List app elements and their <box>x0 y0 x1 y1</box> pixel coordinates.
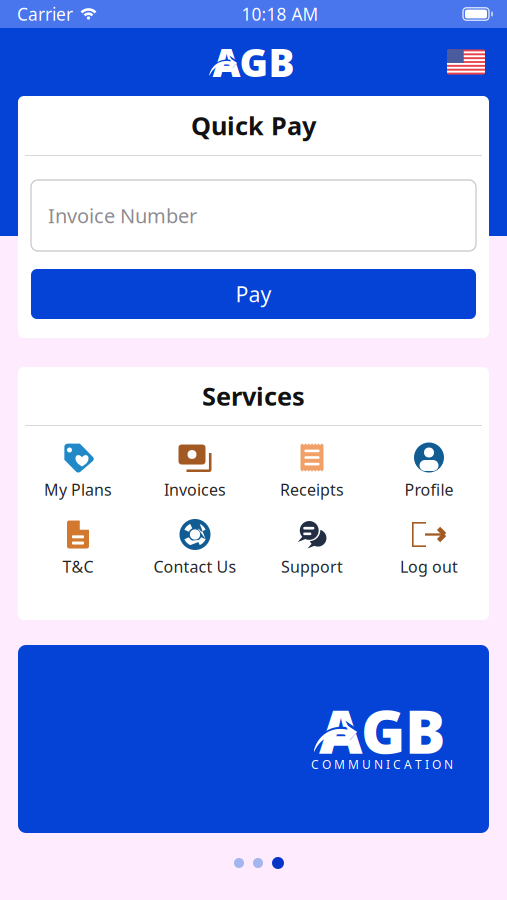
staticText: Contact Us <box>153 556 236 577</box>
staticText: AGB <box>212 36 294 88</box>
staticText: Quick Pay <box>191 109 316 142</box>
staticText: Profile <box>404 479 453 500</box>
staticText: AGB <box>319 691 445 770</box>
button[interactable]: T&C <box>19 509 136 586</box>
staticText: Receipts <box>280 479 344 500</box>
staticText: 10:18 AM <box>241 2 318 25</box>
button[interactable]: Contact Us <box>136 509 253 586</box>
button[interactable]: AGB <box>18 645 489 833</box>
button[interactable]: Profile <box>370 432 487 509</box>
button[interactable]: Language <box>441 43 491 80</box>
staticText: Invoices <box>164 479 226 500</box>
staticText: My Plans <box>44 479 112 500</box>
staticText: Log out <box>400 556 458 577</box>
staticText: Invoice Number <box>48 202 197 229</box>
staticText: Services <box>202 379 305 413</box>
staticText: T&C <box>62 556 93 577</box>
button[interactable]: Pay <box>31 269 476 319</box>
button[interactable]: My Plans <box>19 432 136 509</box>
button[interactable]: Receipts <box>253 432 370 509</box>
button[interactable]: Support <box>253 509 370 586</box>
staticText: Carrier <box>17 2 73 25</box>
button[interactable]: Log out <box>370 509 487 586</box>
staticText: C O M M U N I C A T I O N <box>311 756 453 772</box>
staticText: Pay <box>235 280 271 308</box>
button[interactable]: Invoices <box>136 432 253 509</box>
staticText: Support <box>281 556 343 577</box>
